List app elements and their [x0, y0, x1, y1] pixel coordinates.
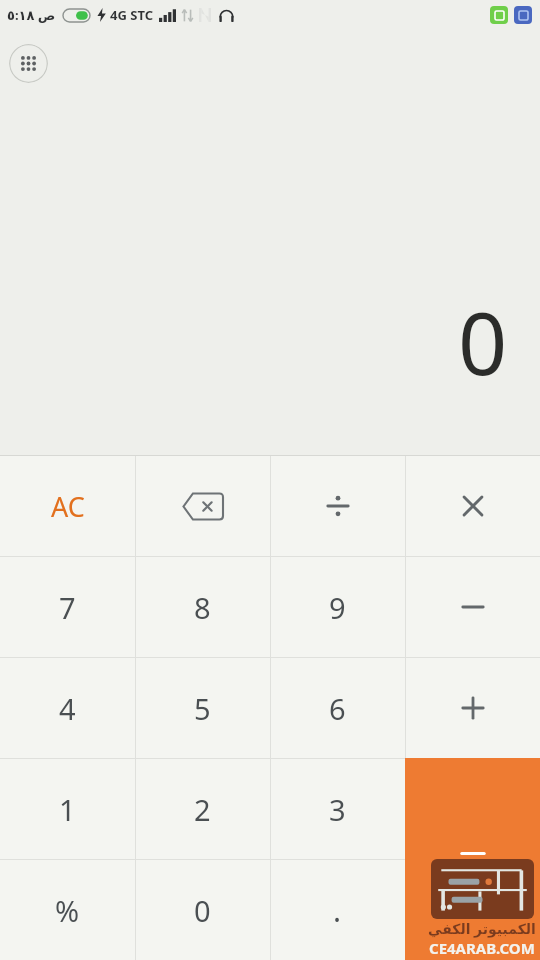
- staticText: الكمبيوتر الكفي: [428, 919, 536, 938]
- button[interactable]: 5: [135, 658, 270, 758]
- button[interactable]: 4: [0, 658, 135, 758]
- button[interactable]: Equals: [405, 860, 540, 960]
- staticText: 2: [194, 790, 211, 829]
- button[interactable]: 8: [135, 557, 270, 657]
- button[interactable]: Backspace: [135, 456, 270, 556]
- staticText: 4G STC: [110, 6, 153, 24]
- button[interactable]: 0: [135, 860, 270, 960]
- button[interactable]: [405, 557, 540, 657]
- button[interactable]: 3: [270, 759, 405, 859]
- staticText: 0: [194, 891, 211, 930]
- staticText: 0: [458, 283, 508, 400]
- button[interactable]: .: [270, 860, 405, 960]
- button[interactable]: %: [0, 860, 135, 960]
- staticText: AC: [51, 488, 85, 525]
- staticText: .: [333, 890, 342, 931]
- staticText: 7: [59, 588, 76, 627]
- staticText: 8: [194, 588, 211, 627]
- staticText: 3: [329, 790, 346, 829]
- staticText: 6: [329, 689, 346, 728]
- staticText: 5: [194, 689, 211, 728]
- button[interactable]: 6: [270, 658, 405, 758]
- button[interactable]: AC: [0, 456, 135, 556]
- button[interactable]: Equals: [405, 758, 540, 960]
- button[interactable]: Equals: [405, 759, 540, 859]
- staticText: 4: [59, 689, 76, 728]
- button[interactable]: 2: [135, 759, 270, 859]
- button[interactable]: [405, 658, 540, 758]
- button[interactable]: Menu: [9, 44, 48, 83]
- staticText: 9: [329, 588, 346, 627]
- staticText: ص ٥:١٨: [7, 6, 56, 24]
- staticText: 1: [59, 790, 76, 829]
- staticText: %: [55, 891, 80, 930]
- button[interactable]: [270, 456, 405, 556]
- button[interactable]: [405, 456, 540, 556]
- staticText: CE4ARAB.COM: [429, 938, 535, 958]
- button[interactable]: 1: [0, 759, 135, 859]
- button[interactable]: 9: [270, 557, 405, 657]
- button[interactable]: 7: [0, 557, 135, 657]
